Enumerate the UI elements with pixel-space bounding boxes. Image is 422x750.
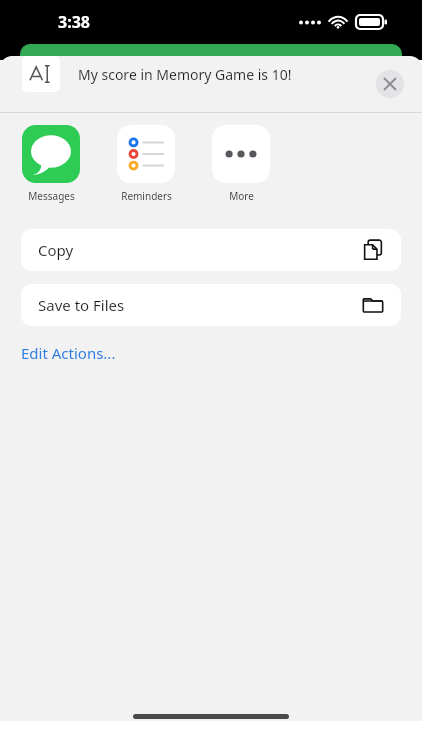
staticText: 3:38 xyxy=(58,11,90,33)
button[interactable]: Messages xyxy=(22,125,80,203)
staticText: Save to Files xyxy=(38,295,125,315)
staticText: Reminders xyxy=(121,189,172,203)
staticText: Messages xyxy=(28,189,75,203)
button[interactable]: Reminders xyxy=(117,125,175,203)
button[interactable]: Close xyxy=(376,70,404,98)
button[interactable]: Copy xyxy=(21,229,401,271)
staticText: Copy xyxy=(38,240,74,260)
button[interactable]: More xyxy=(212,125,270,203)
button[interactable]: Edit Actions... xyxy=(21,340,116,366)
button[interactable]: Save to Files xyxy=(21,284,401,326)
staticText: Edit Actions... xyxy=(21,343,116,363)
staticText: My score in Memory Game is 10! xyxy=(78,65,292,84)
staticText: More xyxy=(229,189,254,203)
